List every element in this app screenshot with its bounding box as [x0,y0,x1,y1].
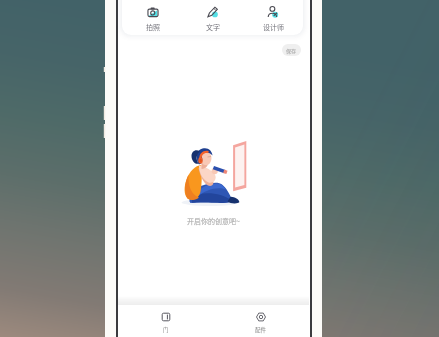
button[interactable]: 拍照 [122,0,183,35]
staticText: 文字 [206,22,220,32]
staticText: 门 [163,326,169,334]
button[interactable]: 保存 [282,44,301,56]
button[interactable]: 画布 [118,305,213,337]
staticText: 设计师 [263,22,284,32]
button[interactable]: 设计师 [243,0,303,35]
button[interactable]: 文字 [183,0,243,35]
staticText: 拍照 [146,22,160,32]
staticText: 配件 [255,326,267,334]
staticText: 开启你的创意吧~ [187,216,240,226]
staticText: 保存 [286,47,297,54]
button[interactable]: 配件 [213,305,309,337]
other: 配件 [256,312,266,322]
other: 画布 [161,312,171,322]
